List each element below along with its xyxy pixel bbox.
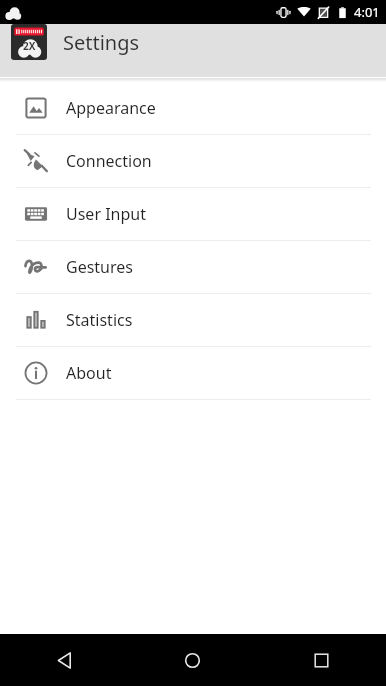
staticText: Gestures — [66, 256, 133, 278]
button[interactable]: Statistics — [0, 294, 386, 346]
button[interactable]: Connection — [0, 135, 386, 187]
button[interactable]: Recent apps — [257, 634, 386, 686]
button[interactable]: Appearance — [0, 82, 386, 134]
staticText: Statistics — [66, 309, 133, 331]
button[interactable]: Back — [0, 634, 128, 686]
button[interactable]: User Input — [0, 188, 386, 240]
button[interactable]: Gestures — [0, 241, 386, 293]
button[interactable]: Home — [128, 634, 257, 686]
button[interactable]: About — [0, 347, 386, 399]
staticText: About — [66, 362, 112, 384]
staticText: 2X — [23, 39, 36, 53]
staticText: 4:01 — [354, 3, 380, 21]
staticText: User Input — [66, 203, 146, 225]
staticText: Appearance — [66, 97, 156, 119]
staticText: Connection — [66, 150, 152, 172]
staticText: Settings — [63, 29, 140, 56]
